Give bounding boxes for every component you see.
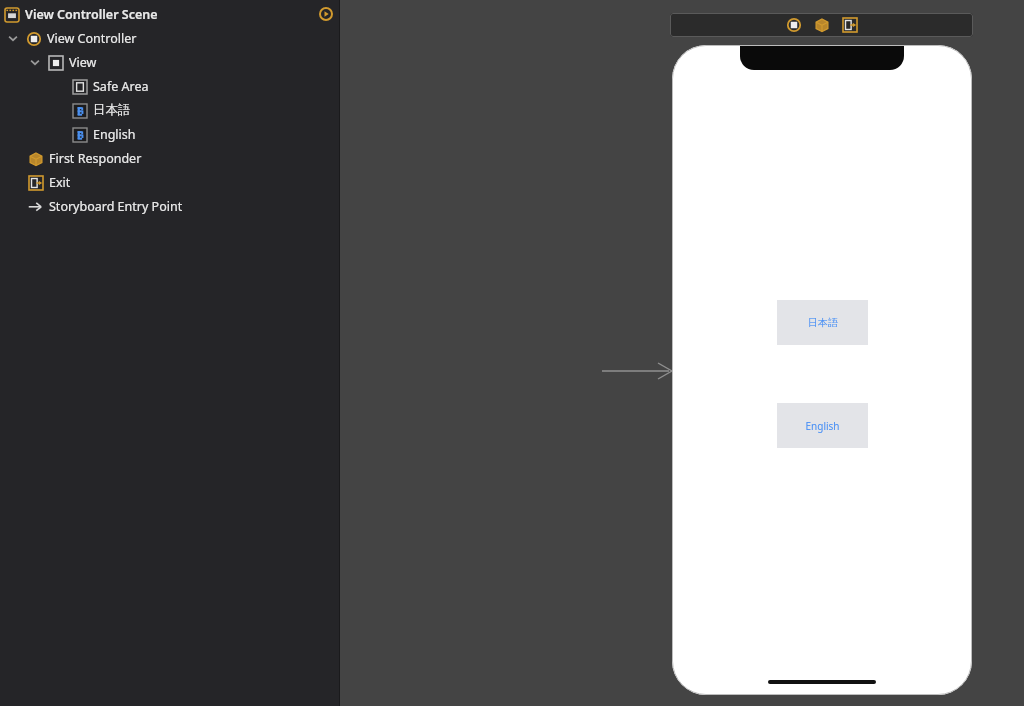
button[interactable]: View Controller Scene (0, 2, 340, 26)
staticText: View (69, 54, 97, 71)
staticText: Safe Area (93, 78, 149, 95)
staticText: 日本語 (808, 316, 838, 329)
button[interactable]: English (777, 403, 868, 448)
staticText: English (805, 419, 840, 433)
button[interactable]: Exit (842, 17, 858, 33)
button[interactable]: First Responder (814, 17, 830, 33)
button[interactable]: 日本語 (777, 300, 868, 345)
button[interactable]: Exit (0, 170, 340, 194)
button[interactable]: Safe Area (0, 74, 340, 98)
staticText: English (93, 126, 136, 143)
staticText: View Controller Scene (25, 6, 158, 23)
staticText: First Responder (49, 150, 142, 167)
button[interactable]: 日本語 (0, 98, 340, 122)
staticText: Storyboard Entry Point (49, 198, 183, 215)
button[interactable]: View (0, 50, 340, 74)
button[interactable]: View Controller (0, 26, 340, 50)
button[interactable]: View Controller (786, 17, 802, 33)
staticText: 日本語 (93, 102, 131, 118)
staticText: View Controller (47, 30, 137, 47)
staticText: Exit (49, 174, 71, 191)
button[interactable]: First Responder (0, 146, 340, 170)
button[interactable]: Storyboard Entry Point (0, 194, 340, 218)
button[interactable]: English (0, 122, 340, 146)
